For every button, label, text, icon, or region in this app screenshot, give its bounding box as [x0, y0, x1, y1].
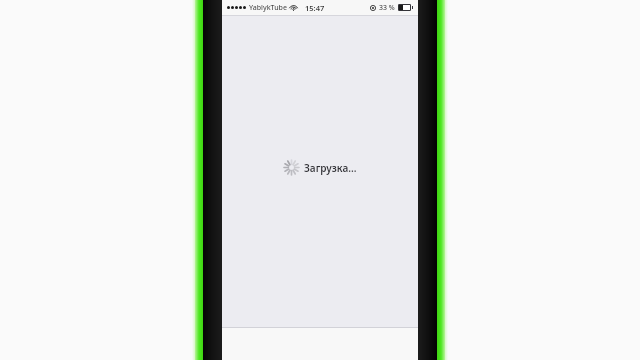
staticText: 33 % — [379, 3, 395, 13]
button[interactable]: Загрузка... — [280, 158, 361, 177]
staticText: YablykTube — [249, 3, 287, 13]
staticText: 15:47 — [305, 3, 325, 13]
staticText: Загрузка... — [304, 161, 357, 175]
